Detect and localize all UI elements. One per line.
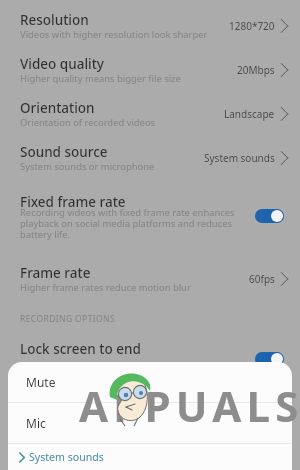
staticText: Fixed frame rate [20, 193, 126, 211]
staticText: RECORDING OPTIONS [20, 313, 116, 325]
staticText: 1280*720 [229, 19, 275, 33]
staticText: Mute [26, 374, 56, 390]
staticText: Video quality [20, 55, 104, 73]
button[interactable]: Video quality [0, 49, 300, 91]
button[interactable]: Mic [8, 403, 292, 443]
staticText: Higher frame rates reduce motion blur [20, 281, 191, 294]
other: Appuals mascot [106, 370, 158, 428]
staticText: 20Mbps [237, 63, 275, 77]
staticText: 60fps [249, 272, 275, 286]
staticText: Orientation [20, 99, 95, 117]
button[interactable]: Toggle [255, 352, 284, 366]
staticText: Landscape [224, 107, 275, 121]
staticText: APPUALS [79, 377, 300, 434]
staticText: Orientation of recorded videos [20, 116, 156, 129]
staticText: Sound source [20, 143, 108, 161]
staticText: System sounds or microphone [20, 160, 155, 173]
staticText: System sounds [29, 450, 104, 464]
staticText: Videos with higher resolution look sharp… [20, 28, 208, 41]
button[interactable]: System sounds [8, 444, 292, 470]
button[interactable]: Mute [8, 362, 292, 402]
staticText: Mic [26, 415, 46, 431]
button[interactable]: Resolution [0, 5, 300, 47]
staticText: Higher quality means bigger file size [20, 72, 181, 85]
button[interactable]: Lock screen to end [0, 336, 300, 380]
button[interactable]: Fixed frame rate [0, 187, 300, 251]
button[interactable]: Orientation [0, 93, 300, 135]
staticText: Frame rate [20, 264, 91, 282]
staticText: Lock screen to end [20, 340, 141, 358]
staticText: Recording videos with fixed frame rate e… [20, 206, 235, 241]
button[interactable]: Toggle [255, 209, 284, 223]
staticText: System sounds [204, 151, 275, 165]
button[interactable]: Sound source [0, 137, 300, 179]
button[interactable]: Frame rate [0, 258, 300, 300]
staticText: Resolution [20, 11, 89, 29]
